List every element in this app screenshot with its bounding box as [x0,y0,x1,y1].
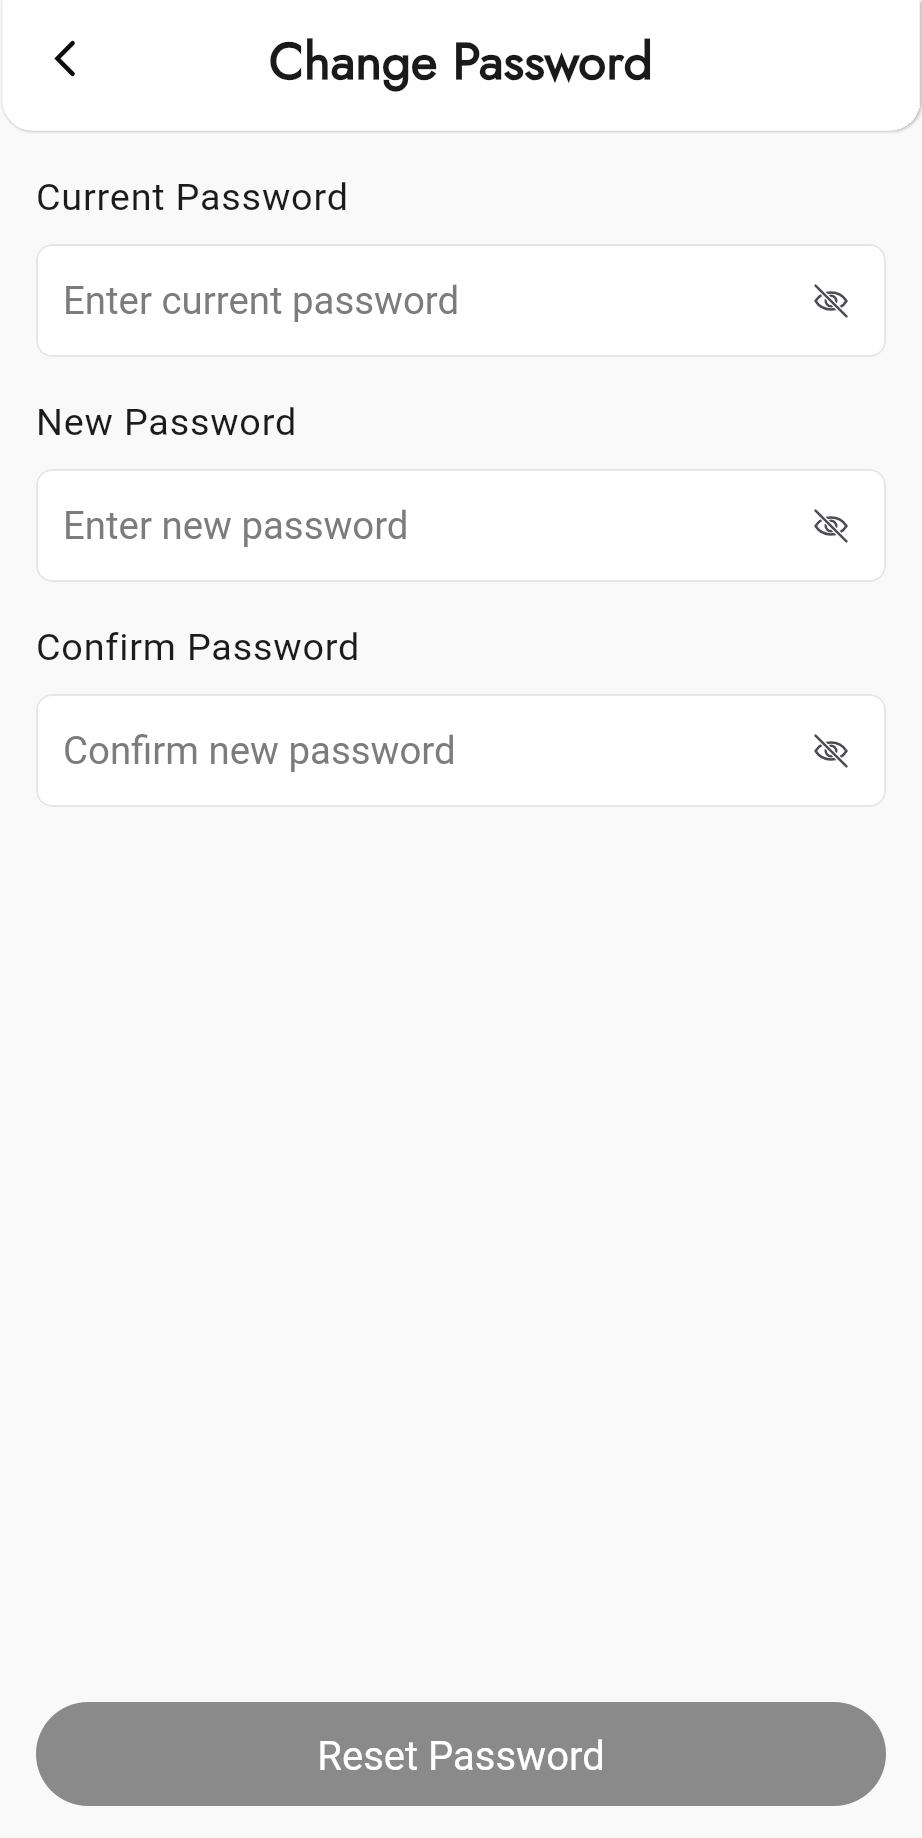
staticText: Confirm new password [63,728,456,773]
staticText: Confirm Password [36,625,361,669]
button[interactable]: Confirm new password [36,694,886,807]
button[interactable]: Show password [802,497,860,555]
button[interactable]: Show password [802,722,860,780]
button[interactable]: Back [23,16,107,100]
staticText: Current Password [36,175,349,219]
staticText: Change Password [269,24,653,98]
staticText: New Password [36,400,298,444]
button[interactable]: Enter new password [36,469,886,582]
button[interactable]: Show password [802,272,860,330]
button[interactable]: Enter current password [36,244,886,357]
button[interactable]: Reset Password [36,1702,886,1806]
staticText: Enter new password [63,503,409,548]
staticText: Enter current password [63,278,460,323]
staticText: Reset Password [317,1733,605,1780]
